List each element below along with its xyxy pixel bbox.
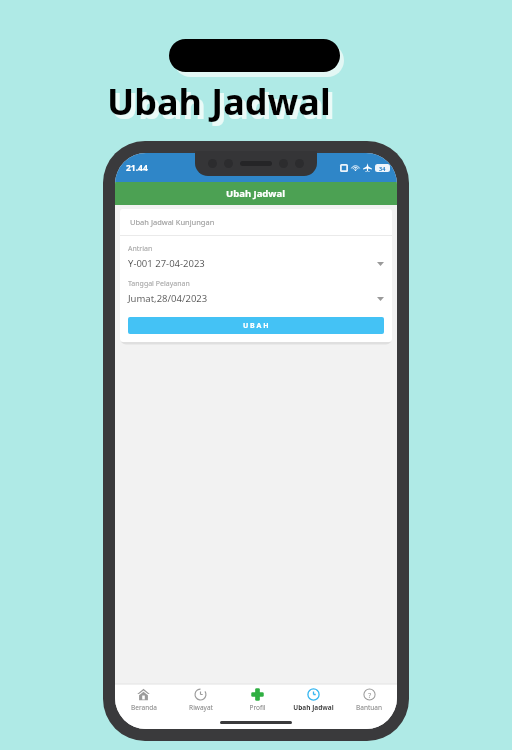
other: Profil [251,688,264,701]
other: Riwayat [194,688,207,701]
button[interactable]: Riwayat [172,684,229,716]
button[interactable]: Beranda [115,684,172,716]
staticText: Ubah Jadwal [226,187,286,200]
button[interactable]: Ubah Jadwal [285,684,341,716]
staticText: Jumat,28/04/2023 [128,292,377,305]
staticText: Beranda [131,703,157,712]
other: Bantuan [363,688,376,701]
staticText: ? [368,690,372,700]
staticText: Bantuan [356,703,382,712]
button[interactable]: Antrian [120,244,392,272]
staticText: Ubah Jadwal Kunjungan [130,217,215,227]
button[interactable]: Bantuan [341,684,397,716]
staticText: Ubah Jadwal [111,81,335,130]
staticText: Y-001 27-04-2023 [128,257,377,270]
other: Ubah Jadwal [307,688,320,701]
button[interactable]: Profil [229,684,285,716]
staticText: Ubah Jadwal [293,703,334,712]
staticText: Profil [249,703,266,712]
staticText: U B A H [243,321,269,331]
staticText: 21.44 [126,162,148,174]
staticText: Tanggal Pelayanan [128,279,190,289]
staticText: Riwayat [189,703,213,712]
button[interactable]: U B A H [128,317,384,334]
other: Beranda [137,688,150,701]
staticText: Ubah Jadwal [107,77,331,126]
staticText: 34 [379,165,386,172]
staticText: Antrian [128,244,153,254]
button[interactable]: Tanggal Pelayanan [120,279,392,307]
